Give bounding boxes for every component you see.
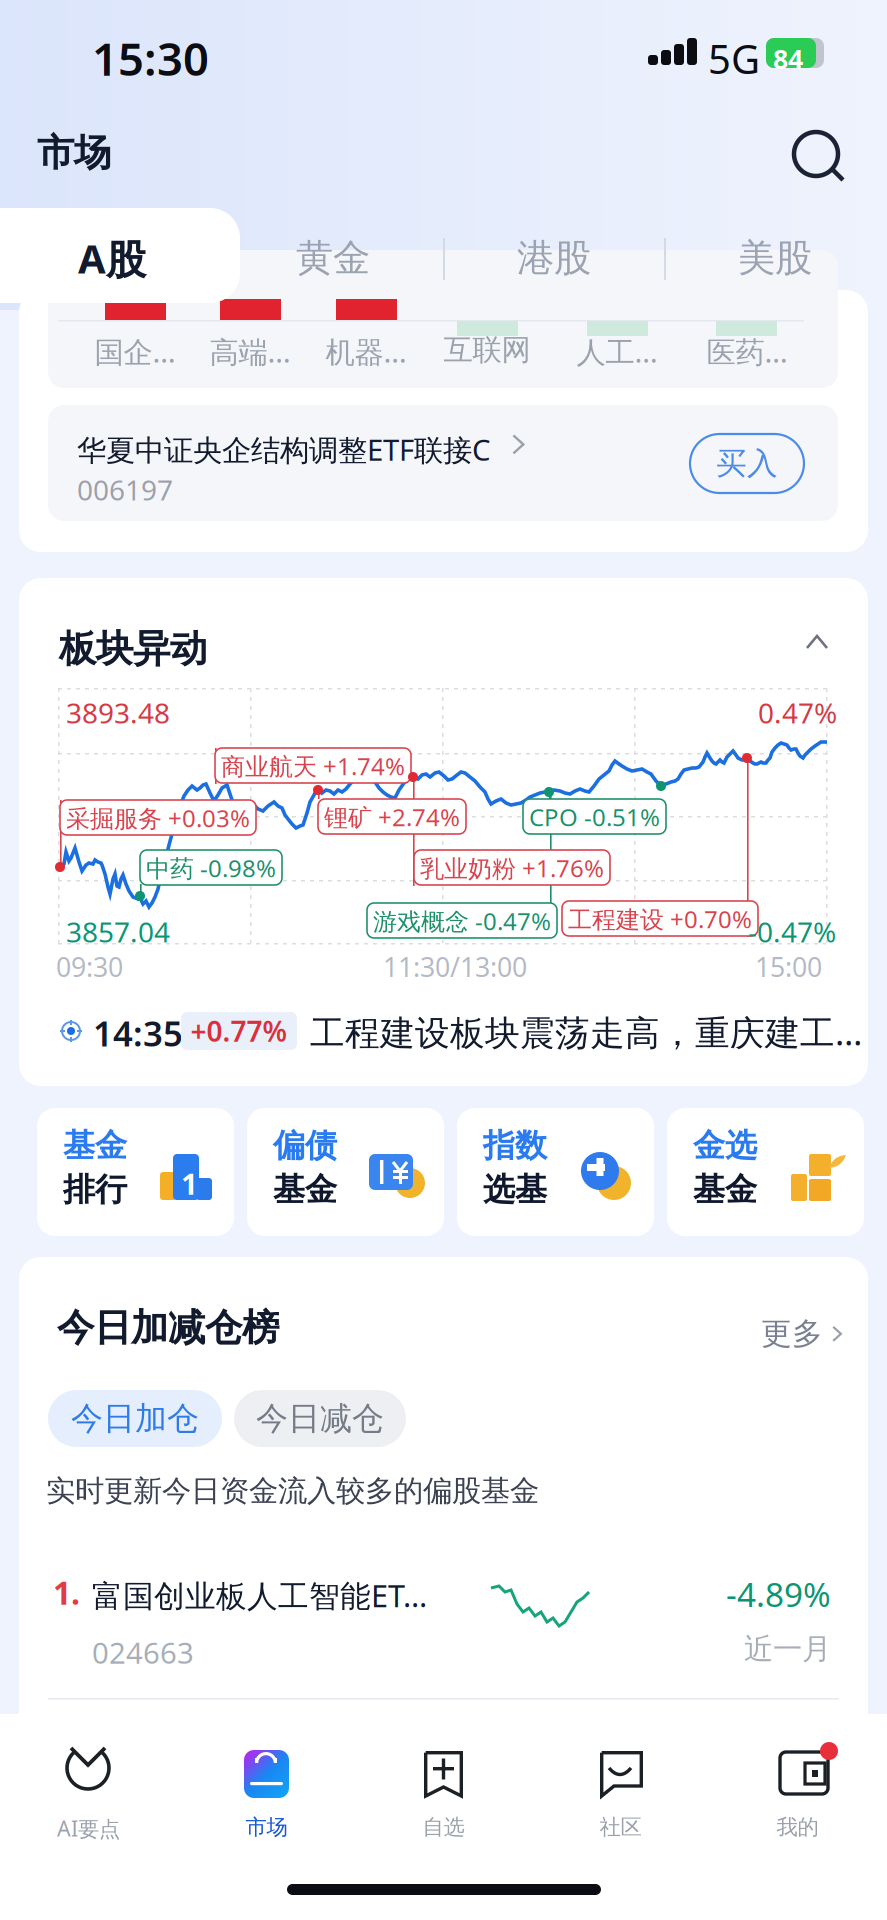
- staticText: 3893.48: [66, 694, 170, 731]
- staticText: 实时更新今日资金流入较多的偏股基金: [46, 1473, 539, 1509]
- button[interactable]: A股: [1, 208, 222, 308]
- staticText: 游戏概念 -0.47%: [373, 905, 551, 937]
- staticText: 近一月: [744, 1631, 831, 1667]
- button[interactable]: 指数: [457, 1108, 654, 1236]
- button[interactable]: 金选: [667, 1108, 864, 1236]
- staticText: 今日减仓: [256, 1399, 384, 1438]
- staticText: 人工…: [576, 332, 657, 371]
- staticText: 买入: [716, 445, 778, 482]
- staticText: 工程建设板块震荡走高，重庆建工…: [310, 1009, 862, 1055]
- staticText: 市场: [245, 1814, 287, 1840]
- button[interactable]: AI要点: [0, 1722, 177, 1852]
- staticText: 基金: [63, 1126, 127, 1165]
- staticText: 国企…: [94, 332, 175, 371]
- staticText: 选基: [483, 1170, 547, 1209]
- button[interactable]: 今日加仓: [48, 1390, 222, 1447]
- button[interactable]: 今日减仓: [234, 1390, 406, 1447]
- staticText: 指数: [483, 1126, 547, 1165]
- staticText: 1: [181, 1164, 198, 1203]
- staticText: CPO -0.51%: [529, 801, 660, 833]
- staticText: 金选: [693, 1126, 757, 1165]
- button[interactable]: 偏债: [247, 1108, 444, 1236]
- staticText: 黄金: [296, 235, 370, 281]
- button[interactable]: 我的: [709, 1722, 886, 1852]
- staticText: 0.47%: [758, 694, 837, 731]
- staticText: 市场: [37, 130, 111, 176]
- staticText: 84: [773, 41, 803, 76]
- staticText: +0.77%: [190, 1012, 287, 1050]
- staticText: 采掘服务 +0.03%: [66, 802, 250, 834]
- button[interactable]: 黄金: [222, 208, 443, 308]
- staticText: 排行: [63, 1170, 127, 1209]
- staticText: 1.: [53, 1571, 80, 1613]
- staticText: 高端…: [209, 332, 290, 371]
- button[interactable]: 基金: [37, 1108, 234, 1236]
- staticText: 港股: [517, 235, 591, 281]
- button[interactable]: 港股: [443, 208, 664, 308]
- staticText: 美股: [738, 235, 812, 281]
- staticText: 板块异动: [59, 626, 207, 672]
- staticText: 富国创业板人工智能ET…: [92, 1575, 427, 1616]
- staticText: 今日加仓: [71, 1399, 199, 1438]
- staticText: 锂矿 +2.74%: [324, 801, 460, 833]
- button[interactable]: 更多: [761, 1315, 843, 1353]
- staticText: 工程建设 +0.70%: [568, 903, 752, 935]
- staticText: 社区: [599, 1814, 641, 1840]
- staticText: 基金: [693, 1170, 757, 1209]
- staticText: A股: [78, 231, 146, 285]
- staticText: 我的: [776, 1814, 818, 1840]
- staticText: 偏债: [273, 1126, 337, 1165]
- staticText: 机器…: [325, 332, 406, 371]
- button[interactable]: 搜索: [782, 119, 854, 191]
- staticText: 14:35: [93, 1010, 183, 1056]
- staticText: 互联网: [443, 332, 530, 368]
- staticText: 3857.04: [66, 913, 170, 950]
- staticText: AI要点: [57, 1814, 120, 1842]
- button[interactable]: 社区: [532, 1722, 709, 1852]
- staticText: 5G: [708, 32, 760, 85]
- staticText: 今日加减仓榜: [57, 1305, 279, 1351]
- staticText: 基金: [273, 1170, 337, 1209]
- button[interactable]: 自选: [355, 1722, 532, 1852]
- staticText: 华夏中证央企结构调整ETF联接C: [77, 430, 491, 469]
- staticText: -0.47%: [748, 913, 836, 950]
- button[interactable]: 市场: [178, 1722, 355, 1852]
- staticText: 中药 -0.98%: [146, 852, 276, 884]
- staticText: 15:30: [92, 28, 209, 88]
- staticText: 自选: [422, 1814, 464, 1840]
- staticText: 024663: [92, 1633, 194, 1672]
- staticText: 006197: [77, 471, 173, 508]
- staticText: -4.89%: [726, 1572, 831, 1616]
- staticText: 乳业奶粉 +1.76%: [420, 852, 604, 884]
- staticText: 医药…: [706, 332, 787, 371]
- staticText: 更多: [761, 1315, 823, 1353]
- button[interactable]: 收起: [805, 634, 829, 650]
- staticText: 商业航天 +1.74%: [221, 750, 405, 782]
- staticText: 15:00: [755, 949, 822, 984]
- staticText: 11:30/13:00: [383, 949, 527, 984]
- button[interactable]: 买入: [690, 434, 804, 493]
- staticText: 09:30: [56, 949, 123, 984]
- button[interactable]: 美股: [664, 208, 885, 308]
